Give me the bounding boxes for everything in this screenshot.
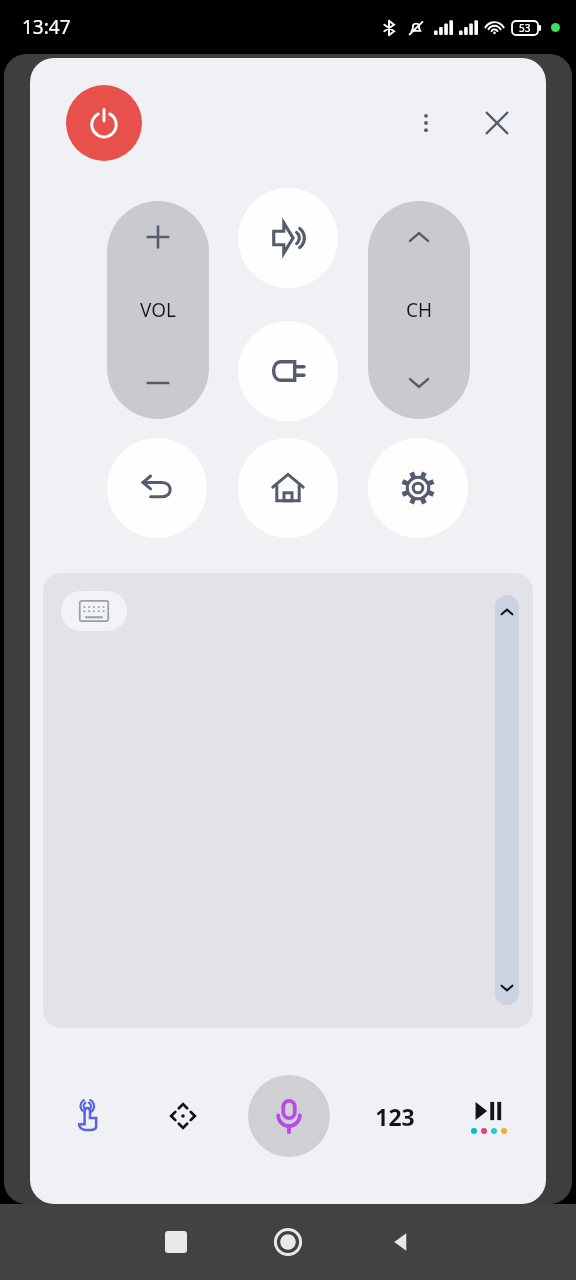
button[interactable]: Mute (238, 188, 338, 288)
button[interactable]: Back (107, 438, 207, 538)
button[interactable]: Voice search (248, 1075, 330, 1157)
staticText: 123 (375, 1101, 415, 1132)
staticText: CH (406, 297, 433, 323)
button[interactable]: More options (404, 101, 448, 145)
button[interactable]: Touchpad (43, 573, 533, 1028)
button[interactable]: Touch gestures (40, 1028, 135, 1204)
staticText: 13:47 (22, 14, 71, 40)
button[interactable]: Input source (238, 321, 338, 421)
button[interactable]: Channel down (368, 347, 470, 419)
button[interactable]: D-pad (135, 1028, 230, 1204)
button[interactable]: Home (238, 438, 338, 538)
staticText: VOL (140, 297, 177, 323)
button[interactable]: Media controls (442, 1028, 536, 1204)
button[interactable]: Home (273, 1227, 303, 1257)
button[interactable]: Channel up (368, 201, 470, 273)
button[interactable]: Close (474, 100, 520, 146)
button[interactable]: Back (387, 1229, 413, 1255)
button[interactable]: Recent apps (165, 1231, 187, 1253)
button[interactable]: Volume up (107, 201, 209, 273)
staticText: 53 (519, 21, 531, 35)
button[interactable]: Power (66, 85, 142, 161)
button[interactable]: Settings (368, 438, 468, 538)
button[interactable]: Keyboard (61, 591, 127, 631)
button[interactable]: Volume down (107, 347, 209, 419)
button[interactable]: 123 (348, 1028, 442, 1204)
